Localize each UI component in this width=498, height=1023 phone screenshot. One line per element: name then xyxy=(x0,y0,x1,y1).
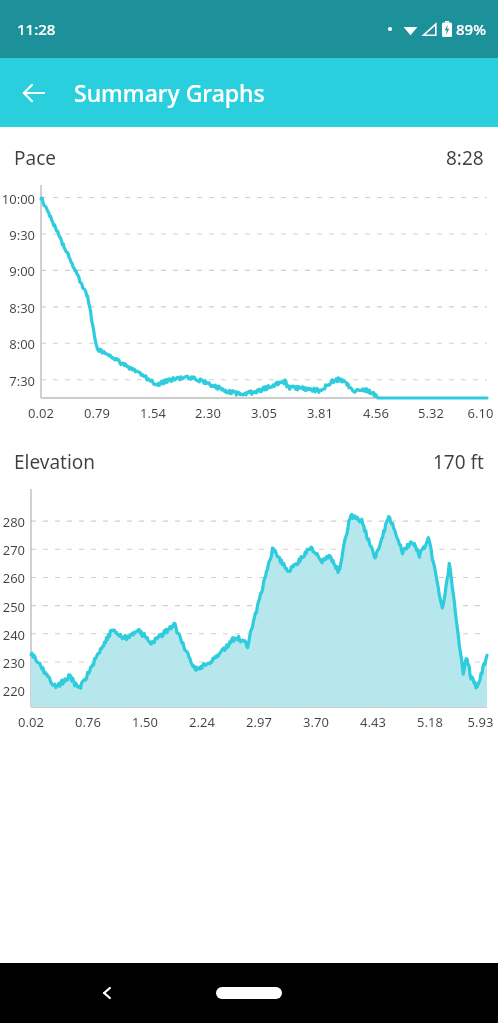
staticText: 270 xyxy=(0,541,25,559)
staticText: 5.93 xyxy=(463,713,498,731)
staticText: 2.24 xyxy=(178,713,226,731)
staticText: Pace xyxy=(14,145,56,171)
staticText: 5.18 xyxy=(406,713,454,731)
staticText: 0.76 xyxy=(64,713,112,731)
staticText: 260 xyxy=(0,569,25,587)
staticText: 11:28 xyxy=(17,19,56,39)
staticText: 8:00 xyxy=(0,335,35,353)
button[interactable]: Home xyxy=(216,987,282,999)
staticText: 8:28 xyxy=(446,145,484,171)
staticText: 7:30 xyxy=(0,372,35,390)
staticText: 230 xyxy=(0,654,25,672)
staticText: Summary Graphs xyxy=(74,77,265,108)
button[interactable]: Back xyxy=(10,69,58,117)
staticText: 4.43 xyxy=(349,713,397,731)
staticText: Elevation xyxy=(14,449,96,475)
staticText: 5.32 xyxy=(407,404,455,422)
staticText: 0.79 xyxy=(73,404,121,422)
staticText: 2.97 xyxy=(235,713,283,731)
staticText: 8:30 xyxy=(0,299,35,317)
staticText: 89% xyxy=(456,19,486,39)
staticText: 3.81 xyxy=(296,404,344,422)
staticText: 2.30 xyxy=(184,404,232,422)
staticText: 9:30 xyxy=(0,226,35,244)
staticText: 6.10 xyxy=(463,404,498,422)
staticText: 3.70 xyxy=(292,713,340,731)
button[interactable]: Back xyxy=(83,969,131,1017)
staticText: 10:00 xyxy=(0,190,35,208)
staticText: 4.56 xyxy=(352,404,400,422)
staticText: 240 xyxy=(0,626,25,644)
staticText: 250 xyxy=(0,598,25,616)
staticText: 1.54 xyxy=(129,404,177,422)
staticText: 0.02 xyxy=(7,713,55,731)
staticText: 3.05 xyxy=(240,404,288,422)
staticText: 0.02 xyxy=(17,404,65,422)
staticText: 280 xyxy=(0,513,25,531)
staticText: 220 xyxy=(0,682,25,700)
staticText: 1.50 xyxy=(121,713,169,731)
staticText: 170 ft xyxy=(433,449,484,475)
staticText: 9:00 xyxy=(0,262,35,280)
